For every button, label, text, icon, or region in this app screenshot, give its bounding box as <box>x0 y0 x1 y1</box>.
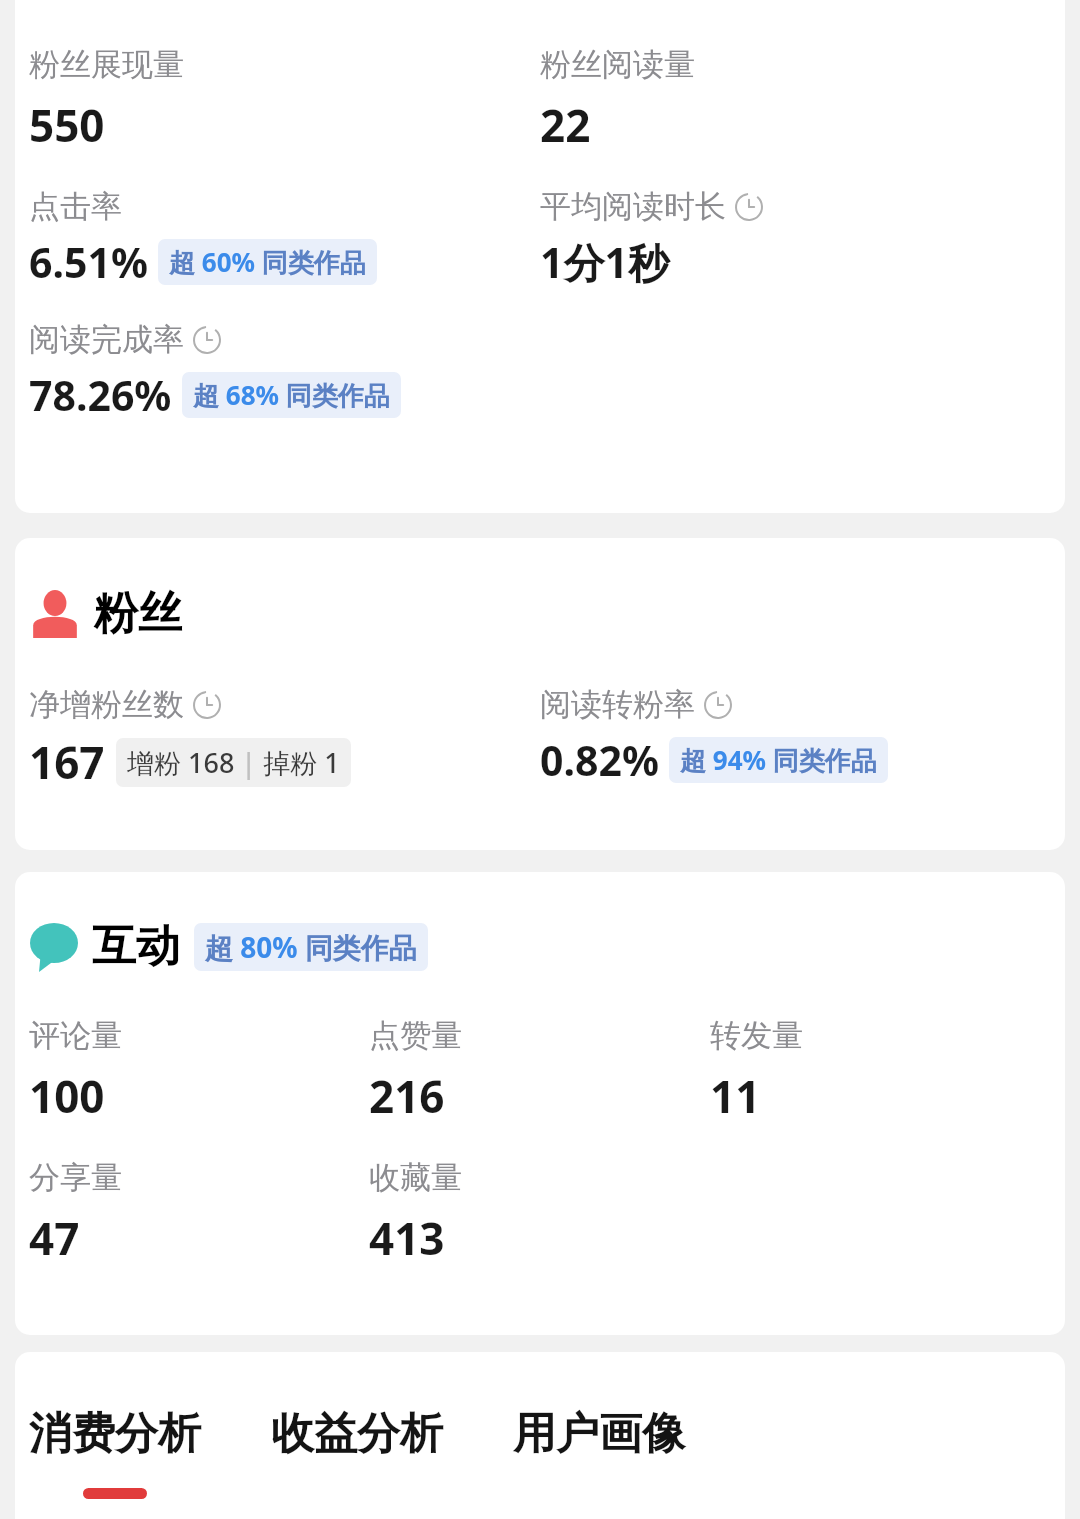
staticText: 互动 <box>92 919 180 974</box>
staticText: 收益分析 <box>271 1407 443 1461</box>
staticText: 平均阅读时长 <box>540 187 726 226</box>
button[interactable]: 收益分析 <box>271 1407 443 1499</box>
staticText: 11 <box>710 1066 761 1126</box>
staticText: 粉丝展现量 <box>29 45 184 84</box>
staticText: 增粉 168 | 掉粉 1 <box>127 744 340 781</box>
staticText: 点击率 <box>29 187 122 226</box>
staticText: 216 <box>369 1066 445 1126</box>
staticText: 167 <box>29 732 105 792</box>
staticText: 超 60% 同类作品 <box>169 244 366 280</box>
staticText: 阅读完成率 <box>29 320 184 359</box>
staticText: 粉丝 <box>94 586 182 641</box>
staticText: 550 <box>29 95 105 155</box>
staticText: 消费分析 <box>29 1407 201 1461</box>
staticText: 粉丝阅读量 <box>540 45 695 84</box>
staticText: 超 68% 同类作品 <box>193 377 390 413</box>
staticText: 用户画像 <box>513 1407 685 1461</box>
staticText: 超 80% 同类作品 <box>205 928 417 966</box>
staticText: 6.51% <box>29 234 148 290</box>
other: 粉丝 <box>29 586 182 641</box>
staticText: 阅读转粉率 <box>540 685 695 724</box>
staticText: 分享量 <box>29 1158 122 1197</box>
staticText: 0.82% <box>540 732 659 788</box>
staticText: 转发量 <box>710 1016 803 1055</box>
staticText: 净增粉丝数 <box>29 685 184 724</box>
staticText: 1分1秒 <box>540 234 669 290</box>
button[interactable]: 消费分析 <box>29 1407 201 1499</box>
staticText: 收藏量 <box>369 1158 462 1197</box>
button[interactable]: 用户画像 <box>513 1407 685 1499</box>
staticText: 点赞量 <box>369 1016 462 1055</box>
staticText: 413 <box>369 1208 445 1268</box>
staticText: 22 <box>540 95 591 155</box>
staticText: 47 <box>29 1208 80 1268</box>
staticText: 78.26% <box>29 367 172 423</box>
staticText: 评论量 <box>29 1016 122 1055</box>
staticText: 超 94% 同类作品 <box>680 742 877 778</box>
staticText: 100 <box>29 1066 105 1126</box>
